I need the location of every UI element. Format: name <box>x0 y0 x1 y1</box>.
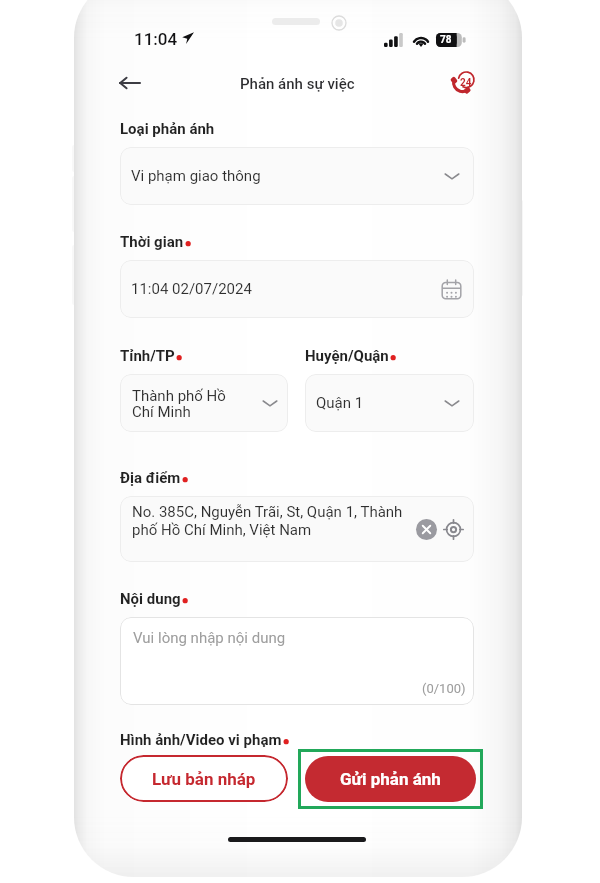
staticText: Tỉnh/TP <box>120 347 175 365</box>
staticText: Hình ảnh/Video vi phạm <box>120 731 282 749</box>
staticText: Huyện/Quận <box>305 347 389 365</box>
staticText: Nội dung <box>120 590 181 608</box>
button[interactable]: Back <box>111 65 147 101</box>
staticText: Quận 1 <box>316 394 364 412</box>
staticText: 78 <box>440 34 452 46</box>
staticText: 24 <box>460 77 472 89</box>
staticText: Vi phạm giao thông <box>131 167 261 185</box>
button[interactable]: Lưu bản nháp <box>120 755 288 802</box>
staticText: Loại phản ánh <box>120 120 215 138</box>
staticText: Thành phố Hồ Chí Minh <box>132 387 226 420</box>
staticText: Lưu bản nháp <box>152 769 256 789</box>
staticText: 11:04 <box>134 29 178 49</box>
button[interactable]: No. 385C, Nguyễn Trãi, St, Quận 1, Thành… <box>120 496 474 562</box>
staticText: No. 385C, Nguyễn Trãi, St, Quận 1, Thành… <box>132 503 403 539</box>
staticText: 11:04 02/07/2024 <box>131 280 252 298</box>
staticText: (0/100) <box>422 681 466 696</box>
staticText: Địa điểm <box>120 469 181 487</box>
button[interactable]: Gửi phản ánh <box>305 756 476 802</box>
staticText: Gửi phản ánh <box>340 769 441 789</box>
button[interactable]: Hotline 24/7 <box>444 65 480 101</box>
button[interactable]: 11:04 02/07/2024 <box>120 260 474 318</box>
button[interactable]: Quận 1 <box>305 374 474 432</box>
button[interactable]: Vui lòng nhập nội dung <box>120 617 474 705</box>
staticText: Thời gian <box>120 233 184 251</box>
button[interactable]: Thành phố Hồ Chí Minh <box>120 374 288 432</box>
staticText: Vui lòng nhập nội dung <box>133 629 286 647</box>
staticText: Phản ánh sự việc <box>240 75 355 93</box>
button[interactable]: Vi phạm giao thông <box>120 147 474 205</box>
